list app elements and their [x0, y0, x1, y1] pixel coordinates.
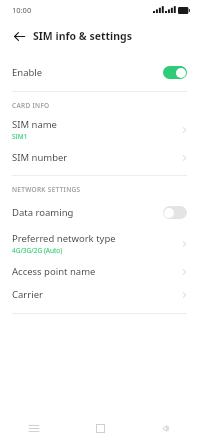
staticText: Preferred network type [12, 232, 116, 245]
staticText: 4G/3G/2G (Auto) [12, 246, 63, 255]
button[interactable]: Off [163, 206, 187, 219]
staticText: CARD INFO [12, 101, 50, 110]
button[interactable]: Carrier [0, 287, 199, 302]
staticText: 10:00 [12, 5, 32, 15]
button[interactable]: Data roaming [0, 200, 199, 224]
button[interactable]: Enable [0, 56, 199, 88]
button[interactable]: Back [8, 25, 30, 47]
staticText: Carrier [12, 288, 43, 301]
staticText: SIM number [12, 151, 68, 164]
button[interactable]: SIM number [0, 150, 199, 165]
staticText: SIM1 [12, 132, 28, 141]
button[interactable]: Preferred network type [0, 231, 199, 256]
staticText: Enable [12, 66, 163, 79]
button[interactable]: Recent apps [0, 412, 67, 444]
staticText: NETWORK SETTINGS [12, 185, 81, 194]
staticText: SIM info & settings [33, 29, 132, 43]
staticText: SIM name [12, 118, 57, 131]
button[interactable]: Back [133, 412, 199, 444]
button[interactable]: On [163, 66, 187, 79]
button[interactable]: Access point name [0, 264, 199, 279]
staticText: Data roaming [12, 206, 163, 219]
staticText: Access point name [12, 265, 96, 278]
button[interactable]: SIM name [0, 117, 199, 142]
button[interactable]: Home [67, 412, 133, 444]
